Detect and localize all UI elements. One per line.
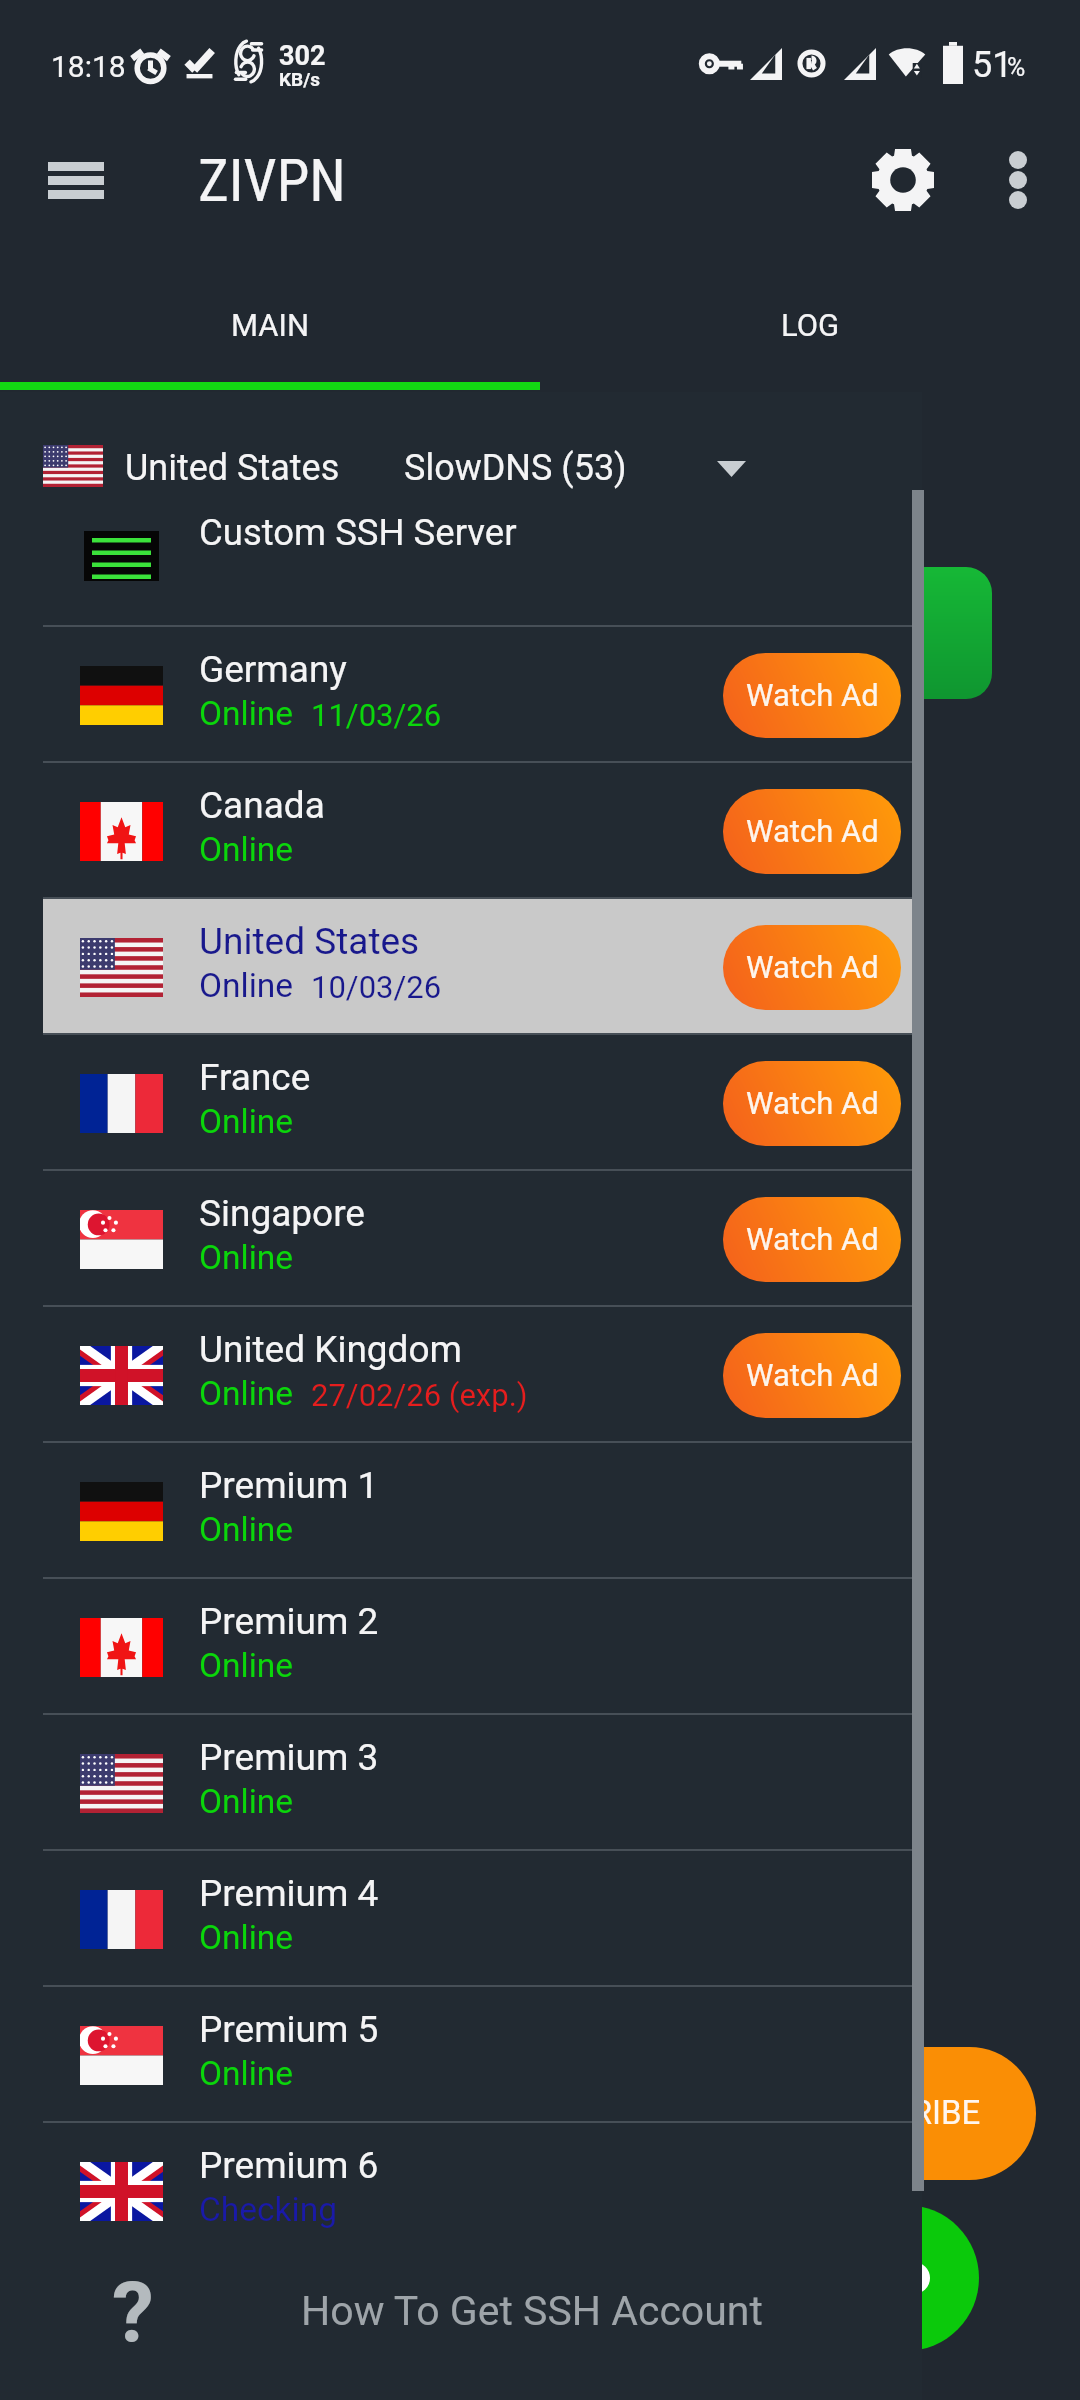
staticText: LOG: [781, 307, 840, 343]
button[interactable]: Watch Ad: [723, 653, 901, 738]
staticText: How To Get SSH Account: [301, 2287, 763, 2335]
button[interactable]: United States: [0, 899, 922, 1035]
staticText: Watch Ad: [746, 1357, 879, 1393]
staticText: 10/03/26: [311, 969, 442, 1005]
staticText: Watch Ad: [746, 1221, 879, 1257]
button[interactable]: LOG: [540, 262, 1080, 390]
staticText: Online: [199, 1782, 294, 1821]
button[interactable]: United States: [0, 422, 922, 510]
staticText: Premium 4: [199, 1872, 379, 1915]
staticText: Online: [199, 1646, 294, 1685]
staticText: Online: [199, 2054, 294, 2093]
button[interactable]: Premium 3: [0, 1715, 922, 1851]
button[interactable]: Premium 2: [0, 1579, 922, 1715]
button[interactable]: Watch Ad: [723, 1197, 901, 1282]
button[interactable]: Singapore: [0, 1171, 922, 1307]
button[interactable]: France: [0, 1035, 922, 1171]
button[interactable]: Watch Ad: [723, 1333, 901, 1418]
staticText: Online: [199, 830, 294, 869]
staticText: Online: [199, 1238, 294, 1277]
staticText: KB/s: [279, 68, 321, 90]
staticText: Singapore: [199, 1192, 365, 1235]
button[interactable]: Settings: [848, 125, 958, 235]
staticText: ZIVPN: [198, 146, 346, 215]
staticText: MAIN: [231, 307, 310, 343]
staticText: France: [199, 1056, 311, 1099]
staticText: 18:18: [51, 49, 126, 84]
staticText: United States: [199, 920, 420, 963]
staticText: Premium 2: [199, 1600, 379, 1643]
staticText: 27/02/26 (exp.): [311, 1377, 528, 1413]
staticText: Online: [199, 1918, 294, 1957]
staticText: Online: [199, 1510, 294, 1549]
button[interactable]: Open navigation menu: [26, 130, 126, 230]
button[interactable]: United Kingdom: [0, 1307, 922, 1443]
button[interactable]: Premium 5: [0, 1987, 922, 2123]
button[interactable]: Watch Ad: [723, 1061, 901, 1146]
button[interactable]: Watch Ad: [723, 789, 901, 874]
staticText: SlowDNS (53): [404, 447, 627, 489]
staticText: Custom SSH Server: [199, 511, 517, 554]
button[interactable]: Germany: [0, 627, 922, 763]
staticText: Watch Ad: [746, 1085, 879, 1121]
staticText: Online: [199, 1374, 294, 1413]
staticText: Germany: [199, 648, 347, 691]
button[interactable]: MAIN: [0, 262, 540, 390]
button[interactable]: Watch Ad: [723, 925, 901, 1010]
staticText: United Kingdom: [199, 1328, 463, 1371]
staticText: Premium 1: [199, 1464, 379, 1507]
button[interactable]: ?: [0, 2259, 922, 2400]
staticText: Premium 6: [199, 2144, 379, 2187]
staticText: Online: [199, 966, 294, 1005]
staticText: Online: [199, 1102, 294, 1141]
staticText: 11/03/26: [311, 697, 442, 733]
button[interactable]: Premium 4: [0, 1851, 922, 1987]
button[interactable]: Canada: [0, 763, 922, 899]
staticText: Watch Ad: [746, 813, 879, 849]
button[interactable]: More options: [968, 130, 1068, 230]
staticText: Premium 3: [199, 1736, 379, 1779]
staticText: 302: [279, 40, 326, 72]
staticText: Premium 5: [199, 2008, 379, 2051]
button[interactable]: Premium 1: [0, 1443, 922, 1579]
staticText: Checking: [199, 2190, 337, 2229]
staticText: ?: [112, 2264, 154, 2362]
button[interactable]: Custom SSH Server: [0, 490, 922, 625]
staticText: Online: [199, 694, 294, 733]
staticText: Watch Ad: [746, 677, 879, 713]
staticText: United States: [125, 447, 340, 489]
button[interactable]: Premium 6: [0, 2123, 922, 2259]
staticText: Watch Ad: [746, 949, 879, 985]
button[interactable]: Connect: [712, 567, 992, 699]
staticText: Canada: [199, 784, 325, 827]
staticText: 51: [972, 44, 1013, 86]
staticText: SUBSCRIBE: [809, 2093, 981, 2132]
staticText: %: [1007, 53, 1026, 82]
button[interactable]: SUBSCRIBE: [670, 2047, 1036, 2180]
button[interactable]: Power: [833, 2205, 979, 2351]
